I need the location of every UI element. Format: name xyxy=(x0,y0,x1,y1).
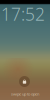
staticText: swipe up to open xyxy=(11,91,39,97)
staticText: 17:52 xyxy=(1,2,45,25)
button[interactable]: Locked xyxy=(19,76,30,87)
